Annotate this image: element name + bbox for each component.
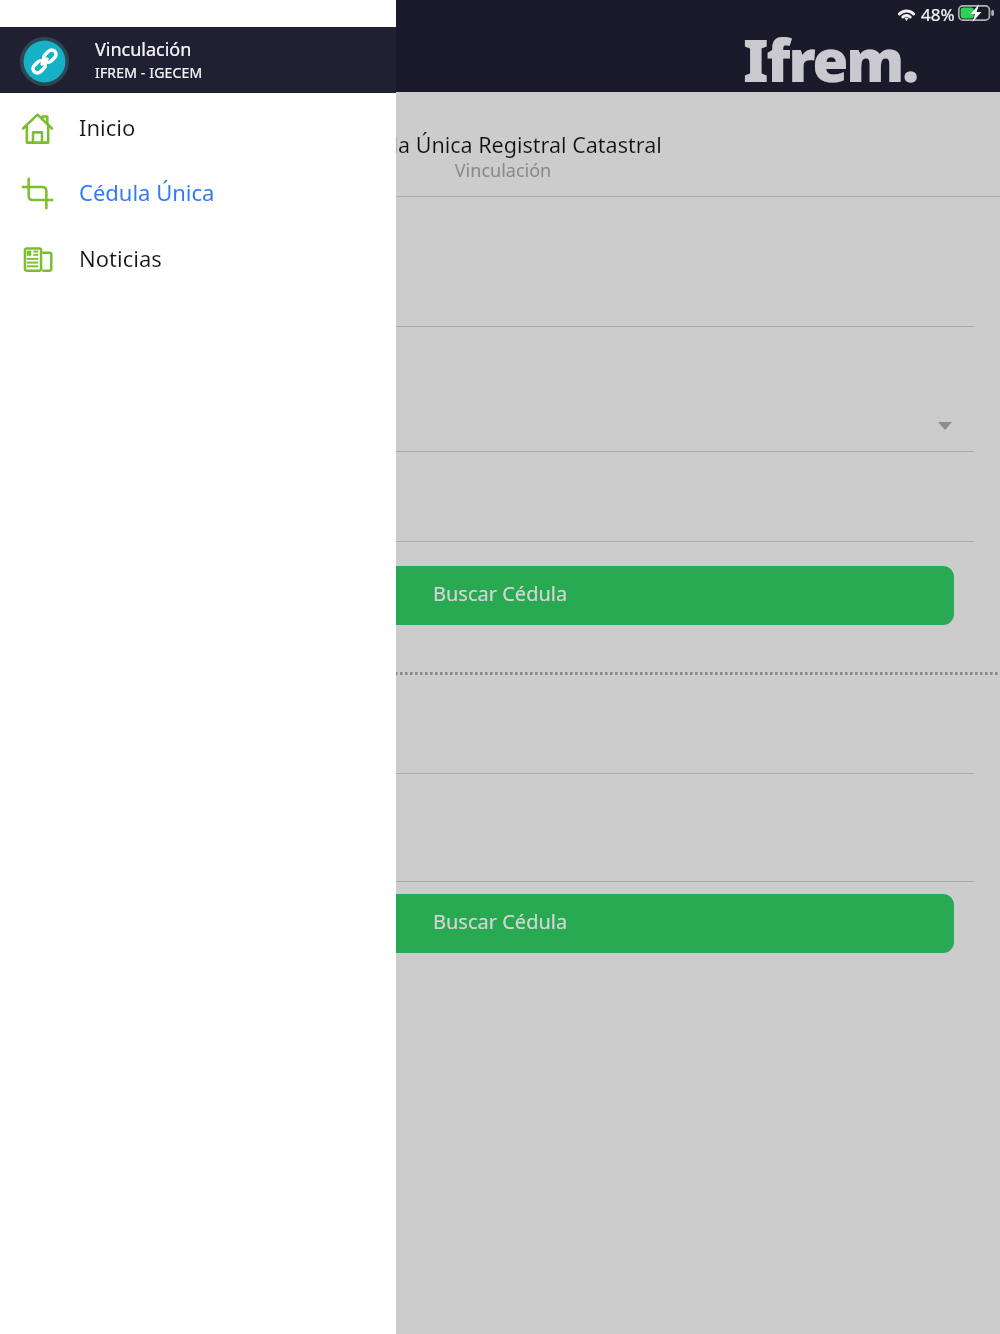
staticText: Buscar Cédula bbox=[433, 908, 568, 935]
other: Vinculación account bbox=[20, 37, 69, 86]
button[interactable]: Vinculación account bbox=[0, 27, 396, 93]
button[interactable]: Cédula Única bbox=[0, 161, 396, 226]
staticText: Vinculación bbox=[95, 37, 192, 62]
staticText: Buscar Cédula bbox=[433, 580, 568, 607]
staticText: IFREM - IGECEM bbox=[95, 63, 203, 82]
button[interactable]: Noticias bbox=[0, 227, 396, 292]
staticText: Vinculación bbox=[3, 158, 1000, 183]
staticText: Cédula Única bbox=[79, 177, 215, 207]
button[interactable]: Inicio bbox=[0, 96, 396, 161]
staticText: Ifrem. bbox=[743, 20, 917, 99]
staticText: Cédula Única Registral Catastral bbox=[1, 130, 1000, 159]
button[interactable]: Buscar Cédula bbox=[25, 894, 954, 953]
staticText: Inicio bbox=[79, 112, 136, 142]
button[interactable]: Buscar Cédula bbox=[25, 566, 954, 625]
staticText: Noticias bbox=[79, 243, 162, 273]
staticText: 48% bbox=[921, 3, 955, 26]
other: Expand bbox=[938, 422, 952, 430]
